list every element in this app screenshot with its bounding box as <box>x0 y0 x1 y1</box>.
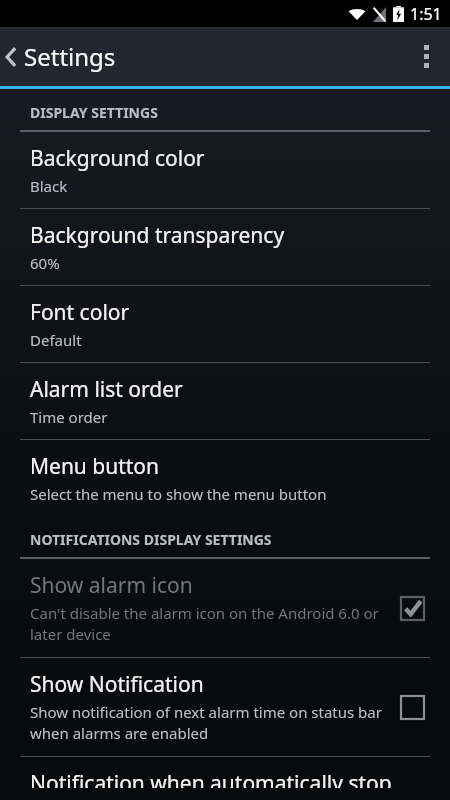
button[interactable]: Alarm list order <box>0 363 450 439</box>
staticText: DISPLAY SETTINGS <box>30 103 158 122</box>
button[interactable]: Show Notification <box>0 658 450 756</box>
staticText: Alarm list order <box>30 375 183 404</box>
staticText: Show alarm icon <box>30 571 193 600</box>
staticText: Background color <box>30 144 205 173</box>
staticText: Can't disable the alarm icon on the Andr… <box>30 603 390 645</box>
button[interactable]: Menu button <box>0 440 450 516</box>
button[interactable]: Font color <box>0 286 450 362</box>
button[interactable]: Notification when automatically stop.. <box>0 757 450 800</box>
staticText: Show Notification <box>30 670 204 699</box>
staticText: Default <box>30 330 82 350</box>
staticText: 1:51 <box>410 3 442 25</box>
staticText: 60% <box>30 253 60 273</box>
staticText: Settings <box>24 40 116 73</box>
staticText: Background transparency <box>30 221 285 250</box>
staticText: Black <box>30 176 68 196</box>
button[interactable]: Show alarm icon <box>0 559 450 657</box>
staticText: Show notification of next alarm time on … <box>30 702 390 744</box>
button[interactable]: Background color <box>0 132 450 208</box>
staticText: Font color <box>30 298 130 327</box>
staticText: NOTIFICATIONS DISPLAY SETTINGS <box>30 530 272 549</box>
staticText: Select the menu to show the menu button <box>30 484 327 504</box>
button[interactable]: Back <box>0 40 124 73</box>
button[interactable]: Show Notification <box>390 685 434 729</box>
button[interactable]: Show alarm icon <box>390 586 434 630</box>
button[interactable]: Background transparency <box>0 209 450 285</box>
button[interactable]: More options <box>402 27 450 86</box>
staticText: Menu button <box>30 452 160 481</box>
staticText: Time order <box>30 407 108 427</box>
staticText: Notification when automatically stop.. <box>30 769 403 788</box>
